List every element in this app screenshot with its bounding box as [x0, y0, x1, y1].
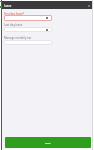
staticText: Save: [45, 141, 51, 144]
button[interactable]: Save: [5, 137, 91, 148]
staticText: Leave: [4, 4, 12, 8]
staticText: Last day leave: [4, 23, 23, 27]
staticText: Manage monthly ear: [4, 36, 32, 40]
button[interactable]: Last day of leave: [4, 27, 52, 32]
button[interactable]: First day of leave: [4, 15, 52, 21]
button[interactable]: More options: [86, 3, 91, 8]
button[interactable]: Manage monthly ear: [4, 40, 52, 45]
staticText: First day leave*: [4, 12, 25, 16]
